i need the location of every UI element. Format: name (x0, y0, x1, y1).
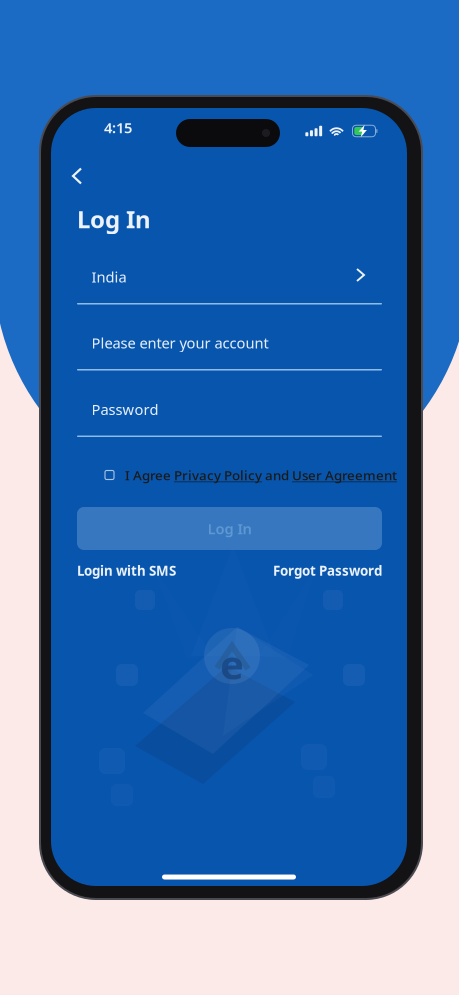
staticText: Forgot Password (273, 562, 382, 579)
staticText: Please enter your account (91, 333, 268, 352)
button[interactable]: Back (57, 160, 97, 192)
staticText: 4:15 (104, 118, 132, 137)
button[interactable]: Login with SMS (77, 562, 176, 579)
staticText: Log In (77, 203, 151, 235)
staticText: India (91, 267, 126, 286)
staticText: Login with SMS (77, 562, 176, 579)
staticText: I Agree Privacy Policy and User Agreemen… (125, 466, 397, 484)
staticText: Log In (207, 519, 251, 538)
button[interactable]: I Agree Privacy Policy and User Agreemen… (125, 466, 397, 484)
button[interactable]: Log In (77, 507, 382, 550)
button[interactable]: India (77, 273, 382, 305)
staticText: e (220, 637, 244, 690)
button[interactable]: Forgot Password (273, 562, 382, 579)
staticText: Password (91, 399, 158, 419)
button[interactable]: I Agree (103, 468, 116, 481)
